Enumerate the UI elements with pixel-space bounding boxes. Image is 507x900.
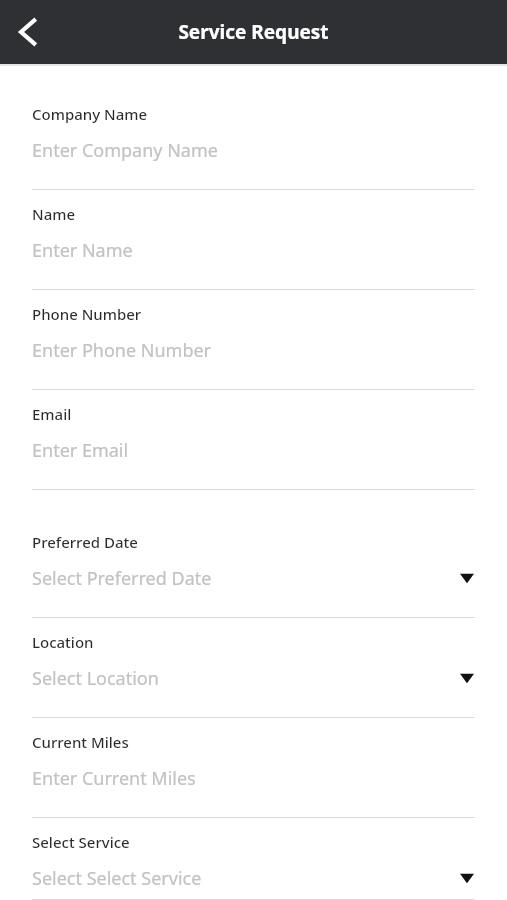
button[interactable]: Name xyxy=(0,190,507,290)
staticText: Enter Name xyxy=(32,238,133,263)
staticText: Enter Current Miles xyxy=(32,766,196,791)
staticText: Company Name xyxy=(32,104,148,124)
button[interactable]: Company Name xyxy=(0,90,507,190)
staticText: Select Select Service xyxy=(32,866,202,891)
button[interactable]: Location xyxy=(0,618,507,718)
other: Open Preferred Date options xyxy=(459,570,475,586)
staticText: Enter Company Name xyxy=(32,138,218,163)
staticText: Location xyxy=(32,632,94,652)
staticText: Preferred Date xyxy=(32,532,138,552)
staticText: Enter Phone Number xyxy=(32,338,212,363)
button[interactable]: Email xyxy=(0,390,507,490)
staticText: Current Miles xyxy=(32,732,129,752)
staticText: Name xyxy=(32,204,76,224)
other: Open Location options xyxy=(459,670,475,686)
button[interactable]: Current Miles xyxy=(0,718,507,818)
staticText: Service Request xyxy=(0,19,507,45)
staticText: Email xyxy=(32,404,72,424)
staticText: Select Service xyxy=(32,832,130,852)
staticText: Enter Email xyxy=(32,438,129,463)
button[interactable]: Phone Number xyxy=(0,290,507,390)
button[interactable]: Back xyxy=(6,10,50,54)
staticText: Select Preferred Date xyxy=(32,566,212,591)
staticText: Select Location xyxy=(32,666,159,691)
button[interactable]: Select Service xyxy=(0,818,507,900)
staticText: Phone Number xyxy=(32,304,142,324)
other: Open Select Service options xyxy=(459,870,475,886)
button[interactable]: Preferred Date xyxy=(0,518,507,618)
